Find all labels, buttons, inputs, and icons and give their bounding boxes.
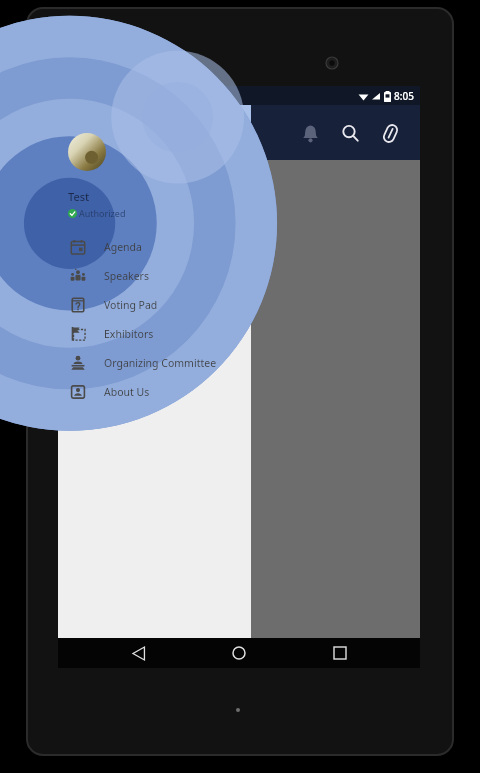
button[interactable]: Recent apps [320, 638, 360, 668]
button[interactable]: Voting Pad [58, 290, 251, 319]
button[interactable]: Organizing Committee [58, 348, 251, 377]
staticText: Exhibitors [104, 327, 154, 341]
button[interactable]: Back [119, 638, 159, 668]
staticText: Agenda [104, 240, 142, 254]
button[interactable]: Search [330, 113, 370, 153]
button[interactable]: Home [219, 638, 259, 668]
staticText: 8:05 [394, 89, 414, 103]
staticText: Organizing Committee [104, 356, 217, 370]
button[interactable]: About Us [58, 377, 251, 406]
button[interactable]: Exhibitors [58, 319, 251, 348]
staticText: Please check and tap to retry [72, 193, 249, 211]
button[interactable]: Notifications [290, 113, 330, 153]
staticText: No Internet Connection Found. [72, 170, 262, 188]
button[interactable]: Speakers [58, 261, 251, 290]
staticText: About Us [104, 385, 150, 399]
button[interactable]: Test [58, 105, 251, 227]
staticText: Test [68, 189, 90, 204]
staticText: Voting Pad [104, 298, 158, 312]
staticText: Authorized [79, 207, 126, 219]
button[interactable]: Agenda [58, 232, 251, 261]
staticText: Speakers [104, 269, 149, 283]
button[interactable]: Attachments [370, 113, 410, 153]
